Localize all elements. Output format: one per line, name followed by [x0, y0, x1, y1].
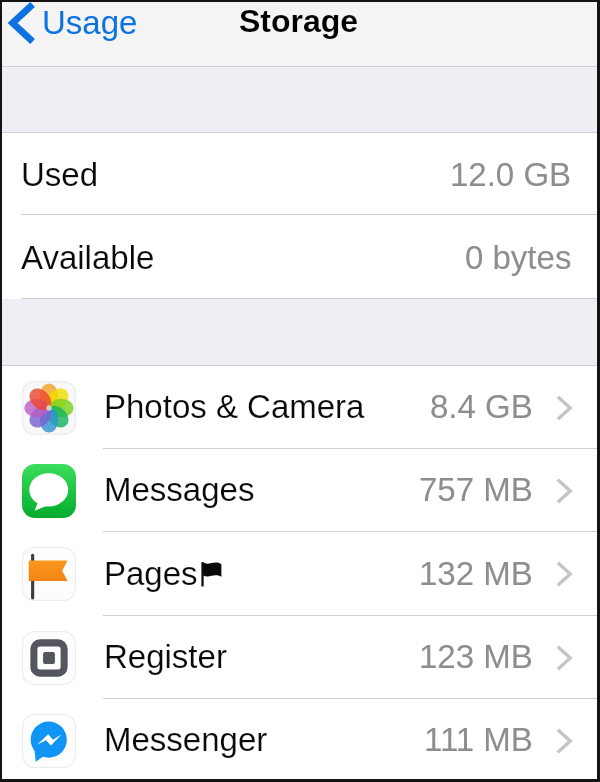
staticText: 757 MB — [419, 471, 533, 508]
staticText: Register — [104, 638, 227, 675]
button[interactable]: Used — [0, 133, 600, 215]
staticText: Usage — [42, 4, 138, 41]
staticText: Photos & Camera — [104, 388, 365, 425]
button[interactable]: Pages — [0, 532, 600, 616]
staticText: Available — [21, 239, 155, 276]
staticText: Storage — [239, 3, 359, 39]
staticText: Pages — [104, 555, 198, 592]
button[interactable]: Messenger — [0, 699, 600, 782]
staticText: 123 MB — [419, 638, 533, 675]
staticText: Messenger — [104, 721, 268, 758]
staticText: 111 MB — [424, 721, 533, 758]
button[interactable]: Register — [0, 616, 600, 699]
staticText: 8.4 GB — [430, 388, 533, 425]
button[interactable]: Messages — [0, 449, 600, 532]
button[interactable]: Available — [0, 215, 600, 299]
staticText: 0 bytes — [465, 239, 572, 276]
button[interactable]: Back — [7, 1, 138, 45]
staticText: Messages — [104, 471, 255, 508]
other: Back — [7, 1, 37, 45]
staticText: Used — [21, 156, 99, 193]
staticText: 12.0 GB — [450, 156, 572, 193]
button[interactable]: Photos & Camera — [0, 366, 600, 449]
staticText: 132 MB — [419, 555, 533, 592]
